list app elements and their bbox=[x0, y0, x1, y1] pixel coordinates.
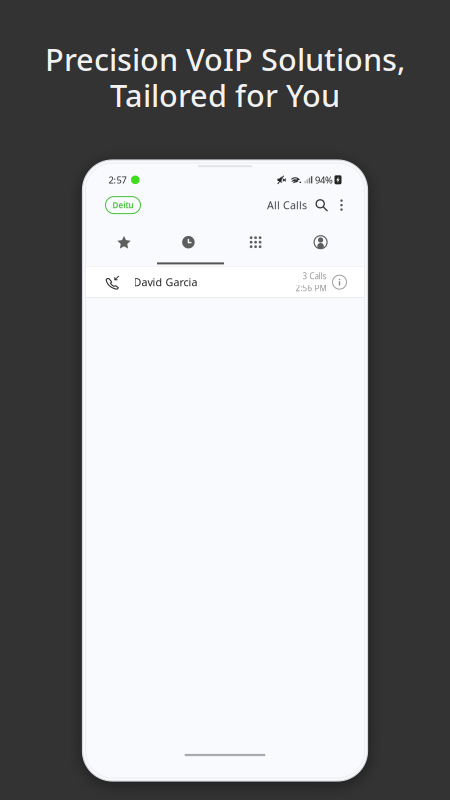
button[interactable]: Contacts bbox=[288, 227, 354, 257]
button[interactable]: Favorites bbox=[91, 227, 157, 257]
staticText: David Garcia bbox=[133, 275, 197, 289]
button[interactable]: Recents bbox=[155, 227, 221, 257]
staticText: 2:57 bbox=[108, 174, 126, 186]
staticText: Tailored for You bbox=[110, 75, 340, 115]
staticText: Deitu bbox=[112, 200, 133, 210]
button[interactable]: David Garcia bbox=[105, 267, 346, 297]
staticText: All Calls bbox=[267, 198, 307, 212]
button[interactable]: Search bbox=[307, 197, 328, 214]
button[interactable]: Deitu bbox=[105, 197, 140, 214]
staticText: 94% bbox=[315, 174, 333, 186]
staticText: 2:56 PM bbox=[295, 283, 326, 293]
staticText: Precision VoIP Solutions, bbox=[45, 39, 405, 79]
button[interactable]: All Calls bbox=[267, 197, 307, 214]
button[interactable]: Keypad bbox=[223, 227, 289, 257]
button[interactable]: More options bbox=[328, 197, 347, 214]
staticText: 3 Calls bbox=[302, 271, 326, 281]
